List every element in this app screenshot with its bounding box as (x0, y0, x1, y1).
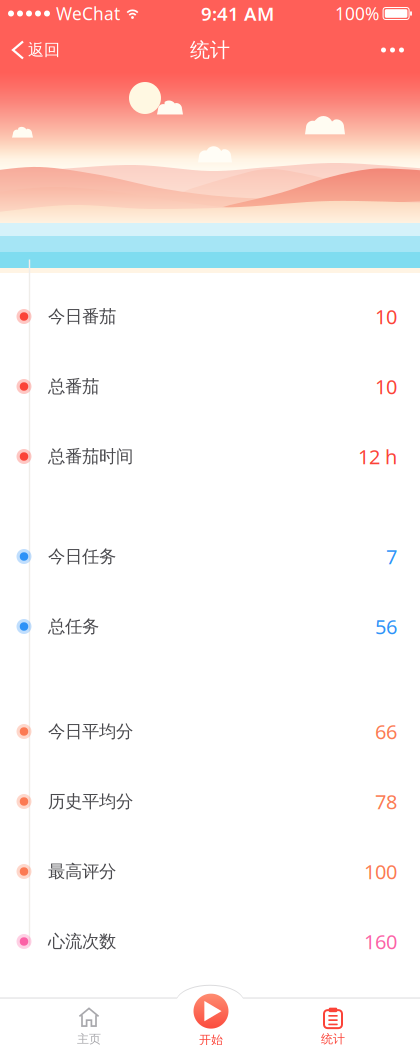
staticText: 开始 (199, 1033, 223, 1045)
staticText: 返回 (28, 40, 60, 60)
staticText: 主页 (77, 1032, 101, 1045)
staticText: 78 (375, 788, 397, 815)
staticText: 统计 (321, 1032, 345, 1045)
button[interactable]: 返回 (0, 27, 70, 73)
button[interactable]: 历史平均分 (0, 766, 420, 836)
staticText: 160 (364, 928, 397, 955)
button[interactable]: 心流次数 (0, 906, 420, 976)
staticText: 总番茄时间 (48, 446, 133, 467)
staticText: 7 (386, 543, 397, 570)
staticText: 历史平均分 (48, 791, 133, 812)
staticText: 56 (375, 613, 397, 640)
staticText: 100% (335, 2, 379, 25)
staticText: 统计 (190, 38, 230, 62)
button[interactable]: 今日任务 (0, 521, 420, 591)
button[interactable]: 今日番茄 (0, 281, 420, 351)
button[interactable]: 总番茄时间 (0, 421, 420, 491)
staticText: 心流次数 (48, 931, 116, 952)
staticText: 今日番茄 (48, 306, 116, 327)
staticText: 总番茄 (48, 376, 99, 397)
staticText: 66 (375, 718, 397, 745)
staticText: 100 (364, 858, 397, 885)
button[interactable]: 开始 (176, 994, 246, 1045)
button[interactable]: 最高评分 (0, 836, 420, 906)
button[interactable]: 总任务 (0, 591, 420, 661)
button[interactable]: 今日平均分 (0, 696, 420, 766)
staticText: 10 (375, 373, 397, 400)
staticText: 今日任务 (48, 546, 116, 567)
button[interactable]: 主页 (34, 1004, 144, 1045)
staticText: 今日平均分 (48, 721, 133, 742)
staticText: 9:41 AM (201, 1, 274, 26)
staticText: WeChat (56, 2, 120, 25)
staticText: 最高评分 (48, 861, 116, 882)
button[interactable]: 总番茄 (0, 351, 420, 421)
staticText: 12 h (358, 443, 397, 470)
button[interactable]: More options (365, 27, 420, 73)
button[interactable]: 统计 (278, 1004, 388, 1045)
staticText: 总任务 (48, 616, 99, 637)
staticText: 10 (375, 303, 397, 330)
